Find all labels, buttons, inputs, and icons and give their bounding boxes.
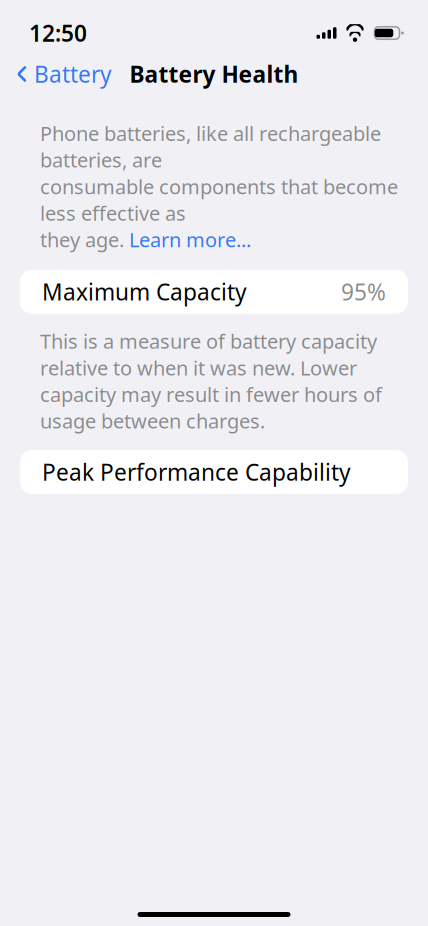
- button[interactable]: Peak Performance Capability: [20, 450, 408, 494]
- staticText: Phone batteries, like all rechargeable b…: [40, 120, 381, 173]
- staticText: consumable components that become less e…: [40, 173, 398, 226]
- staticText: Maximum Capacity: [42, 277, 247, 307]
- staticText: 12:50: [29, 18, 87, 48]
- button[interactable]: Battery: [8, 53, 112, 95]
- staticText: Learn more...: [129, 226, 251, 253]
- staticText: 95%: [341, 277, 386, 307]
- staticText: Peak Performance Capability: [42, 457, 351, 487]
- staticText: This is a measure of battery capacity re…: [40, 328, 382, 434]
- staticText: they age.: [40, 226, 129, 253]
- staticText: Battery: [34, 59, 112, 89]
- button[interactable]: Learn more...: [129, 226, 251, 253]
- staticText: Battery Health: [129, 59, 298, 89]
- button[interactable]: Maximum Capacity: [20, 270, 408, 314]
